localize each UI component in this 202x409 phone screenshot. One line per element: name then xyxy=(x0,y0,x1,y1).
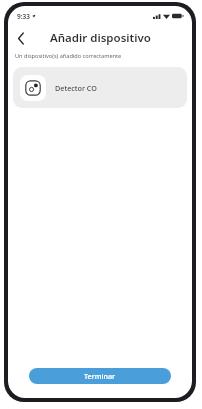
button[interactable]: Terminar xyxy=(29,368,171,384)
staticText: Un dispositivo(s) añadido correctamente xyxy=(15,52,122,60)
button[interactable]: Back xyxy=(12,29,30,47)
staticText: Terminar xyxy=(84,371,116,381)
staticText: Detector CO xyxy=(55,83,97,93)
staticText: Añadir dispositivo xyxy=(50,30,151,46)
button[interactable]: Detector CO xyxy=(13,67,187,108)
staticText: 9:33 xyxy=(17,12,30,21)
